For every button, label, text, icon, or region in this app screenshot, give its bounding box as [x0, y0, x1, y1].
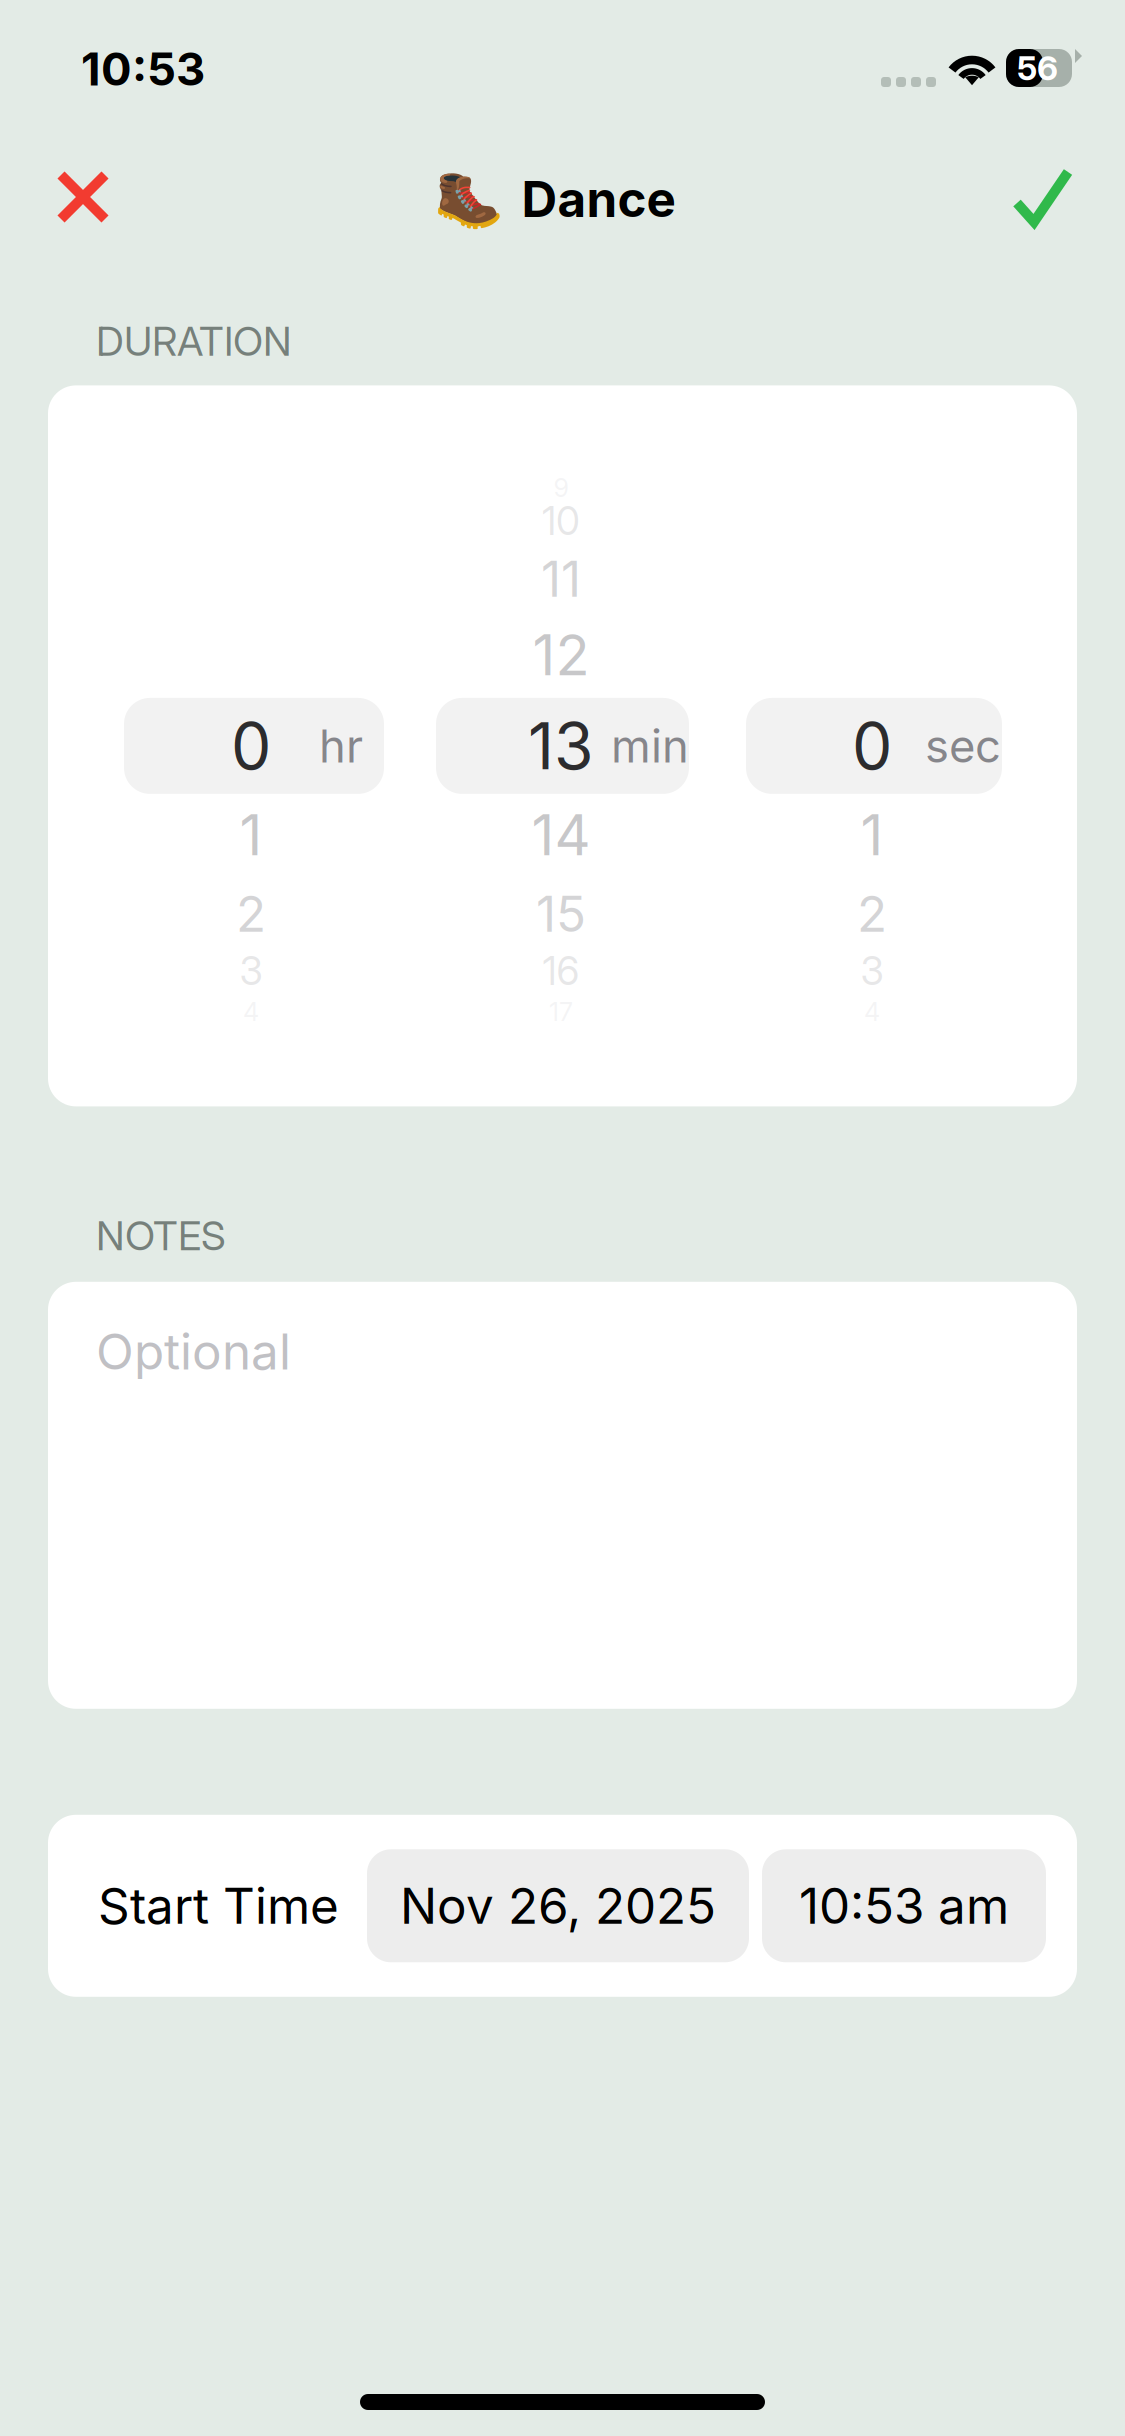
staticText: Start Time: [98, 1876, 339, 1936]
staticText: NOTES: [96, 1211, 226, 1260]
staticText: min: [611, 718, 689, 773]
staticText: DURATION: [96, 317, 292, 365]
staticText: hr: [319, 718, 363, 773]
staticText: 3: [860, 947, 883, 994]
staticText: 9: [553, 473, 568, 503]
staticText: 1: [860, 801, 883, 869]
staticText: 0: [231, 707, 271, 785]
staticText: 10: [542, 497, 580, 544]
staticText: 4: [243, 997, 259, 1027]
staticText: 16: [542, 947, 579, 994]
staticText: 2: [236, 884, 266, 944]
staticText: 4: [864, 997, 880, 1027]
button[interactable]: Nov 26, 2025: [367, 1849, 749, 1962]
staticText: 12: [532, 621, 589, 689]
button[interactable]: Cancel: [30, 144, 136, 250]
staticText: 13: [528, 707, 594, 785]
staticText: 0: [852, 707, 892, 785]
staticText: sec: [925, 718, 1001, 773]
staticText: 56: [1017, 48, 1058, 88]
staticText: 10:53 am: [799, 1876, 1009, 1936]
staticText: 17: [549, 997, 573, 1027]
staticText: Dance: [521, 169, 675, 229]
button[interactable]: Done: [986, 141, 1099, 253]
button[interactable]: 10:53 am: [762, 1849, 1046, 1962]
staticText: 14: [531, 801, 590, 869]
staticText: 15: [536, 884, 586, 944]
staticText: Nov 26, 2025: [400, 1876, 716, 1936]
staticText: 2: [857, 884, 887, 944]
staticText: Optional: [96, 1322, 291, 1381]
staticText: 11: [541, 549, 581, 609]
staticText: 🥾: [433, 166, 503, 232]
staticText: 1: [239, 801, 262, 869]
staticText: 3: [239, 947, 262, 994]
staticText: 10:53: [81, 42, 205, 96]
